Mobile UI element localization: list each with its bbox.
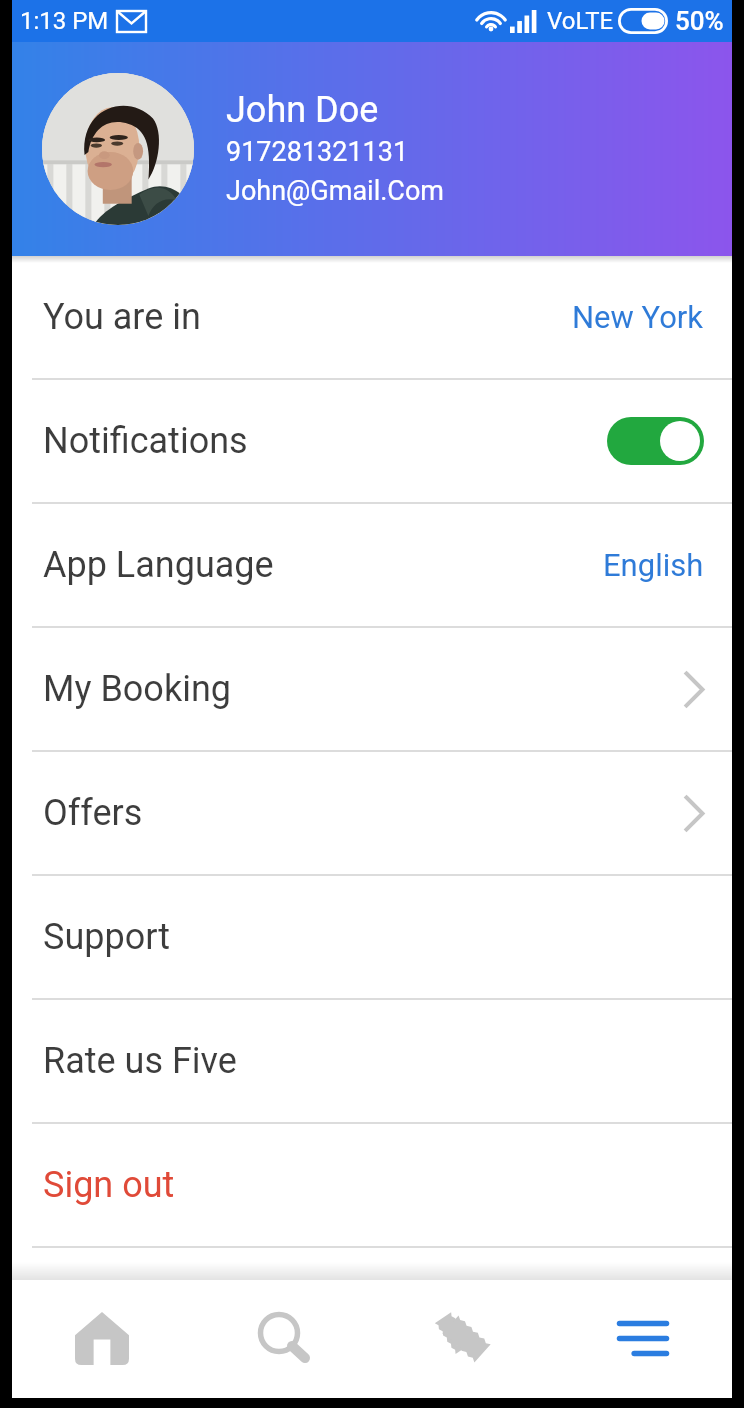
staticText: 917281321131 (226, 136, 409, 168)
button[interactable]: Tickets (372, 1280, 552, 1398)
button[interactable]: Search (192, 1280, 372, 1398)
staticText: VoLTE (547, 7, 614, 35)
staticText: Support (43, 916, 171, 958)
button[interactable]: Support (12, 876, 732, 1000)
button[interactable]: App Language (12, 504, 732, 628)
button[interactable]: My Booking (12, 628, 732, 752)
button[interactable]: Offers (12, 752, 732, 876)
staticText: New York (572, 299, 704, 335)
button[interactable]: Profile photo (42, 73, 194, 225)
button[interactable]: You are in (12, 256, 732, 380)
staticText: Sign out (43, 1164, 175, 1206)
staticText: English (603, 547, 704, 583)
staticText: Offers (43, 792, 143, 834)
button[interactable]: Notifications toggle (607, 417, 704, 465)
button[interactable]: Notifications (12, 380, 732, 504)
button[interactable]: Menu (552, 1280, 732, 1398)
staticText: You are in (43, 296, 201, 338)
staticText: 1:13 PM (20, 7, 109, 35)
staticText: Notifications (43, 420, 248, 462)
button[interactable]: Home (12, 1280, 192, 1398)
staticText: John@Gmail.Com (226, 175, 444, 207)
staticText: App Language (43, 544, 274, 586)
staticText: Rate us Five (43, 1040, 237, 1082)
staticText: My Booking (43, 668, 231, 710)
staticText: 50% (675, 6, 724, 36)
button[interactable]: Sign out (12, 1124, 732, 1248)
button[interactable]: Rate us Five (12, 1000, 732, 1124)
staticText: John Doe (226, 89, 379, 131)
